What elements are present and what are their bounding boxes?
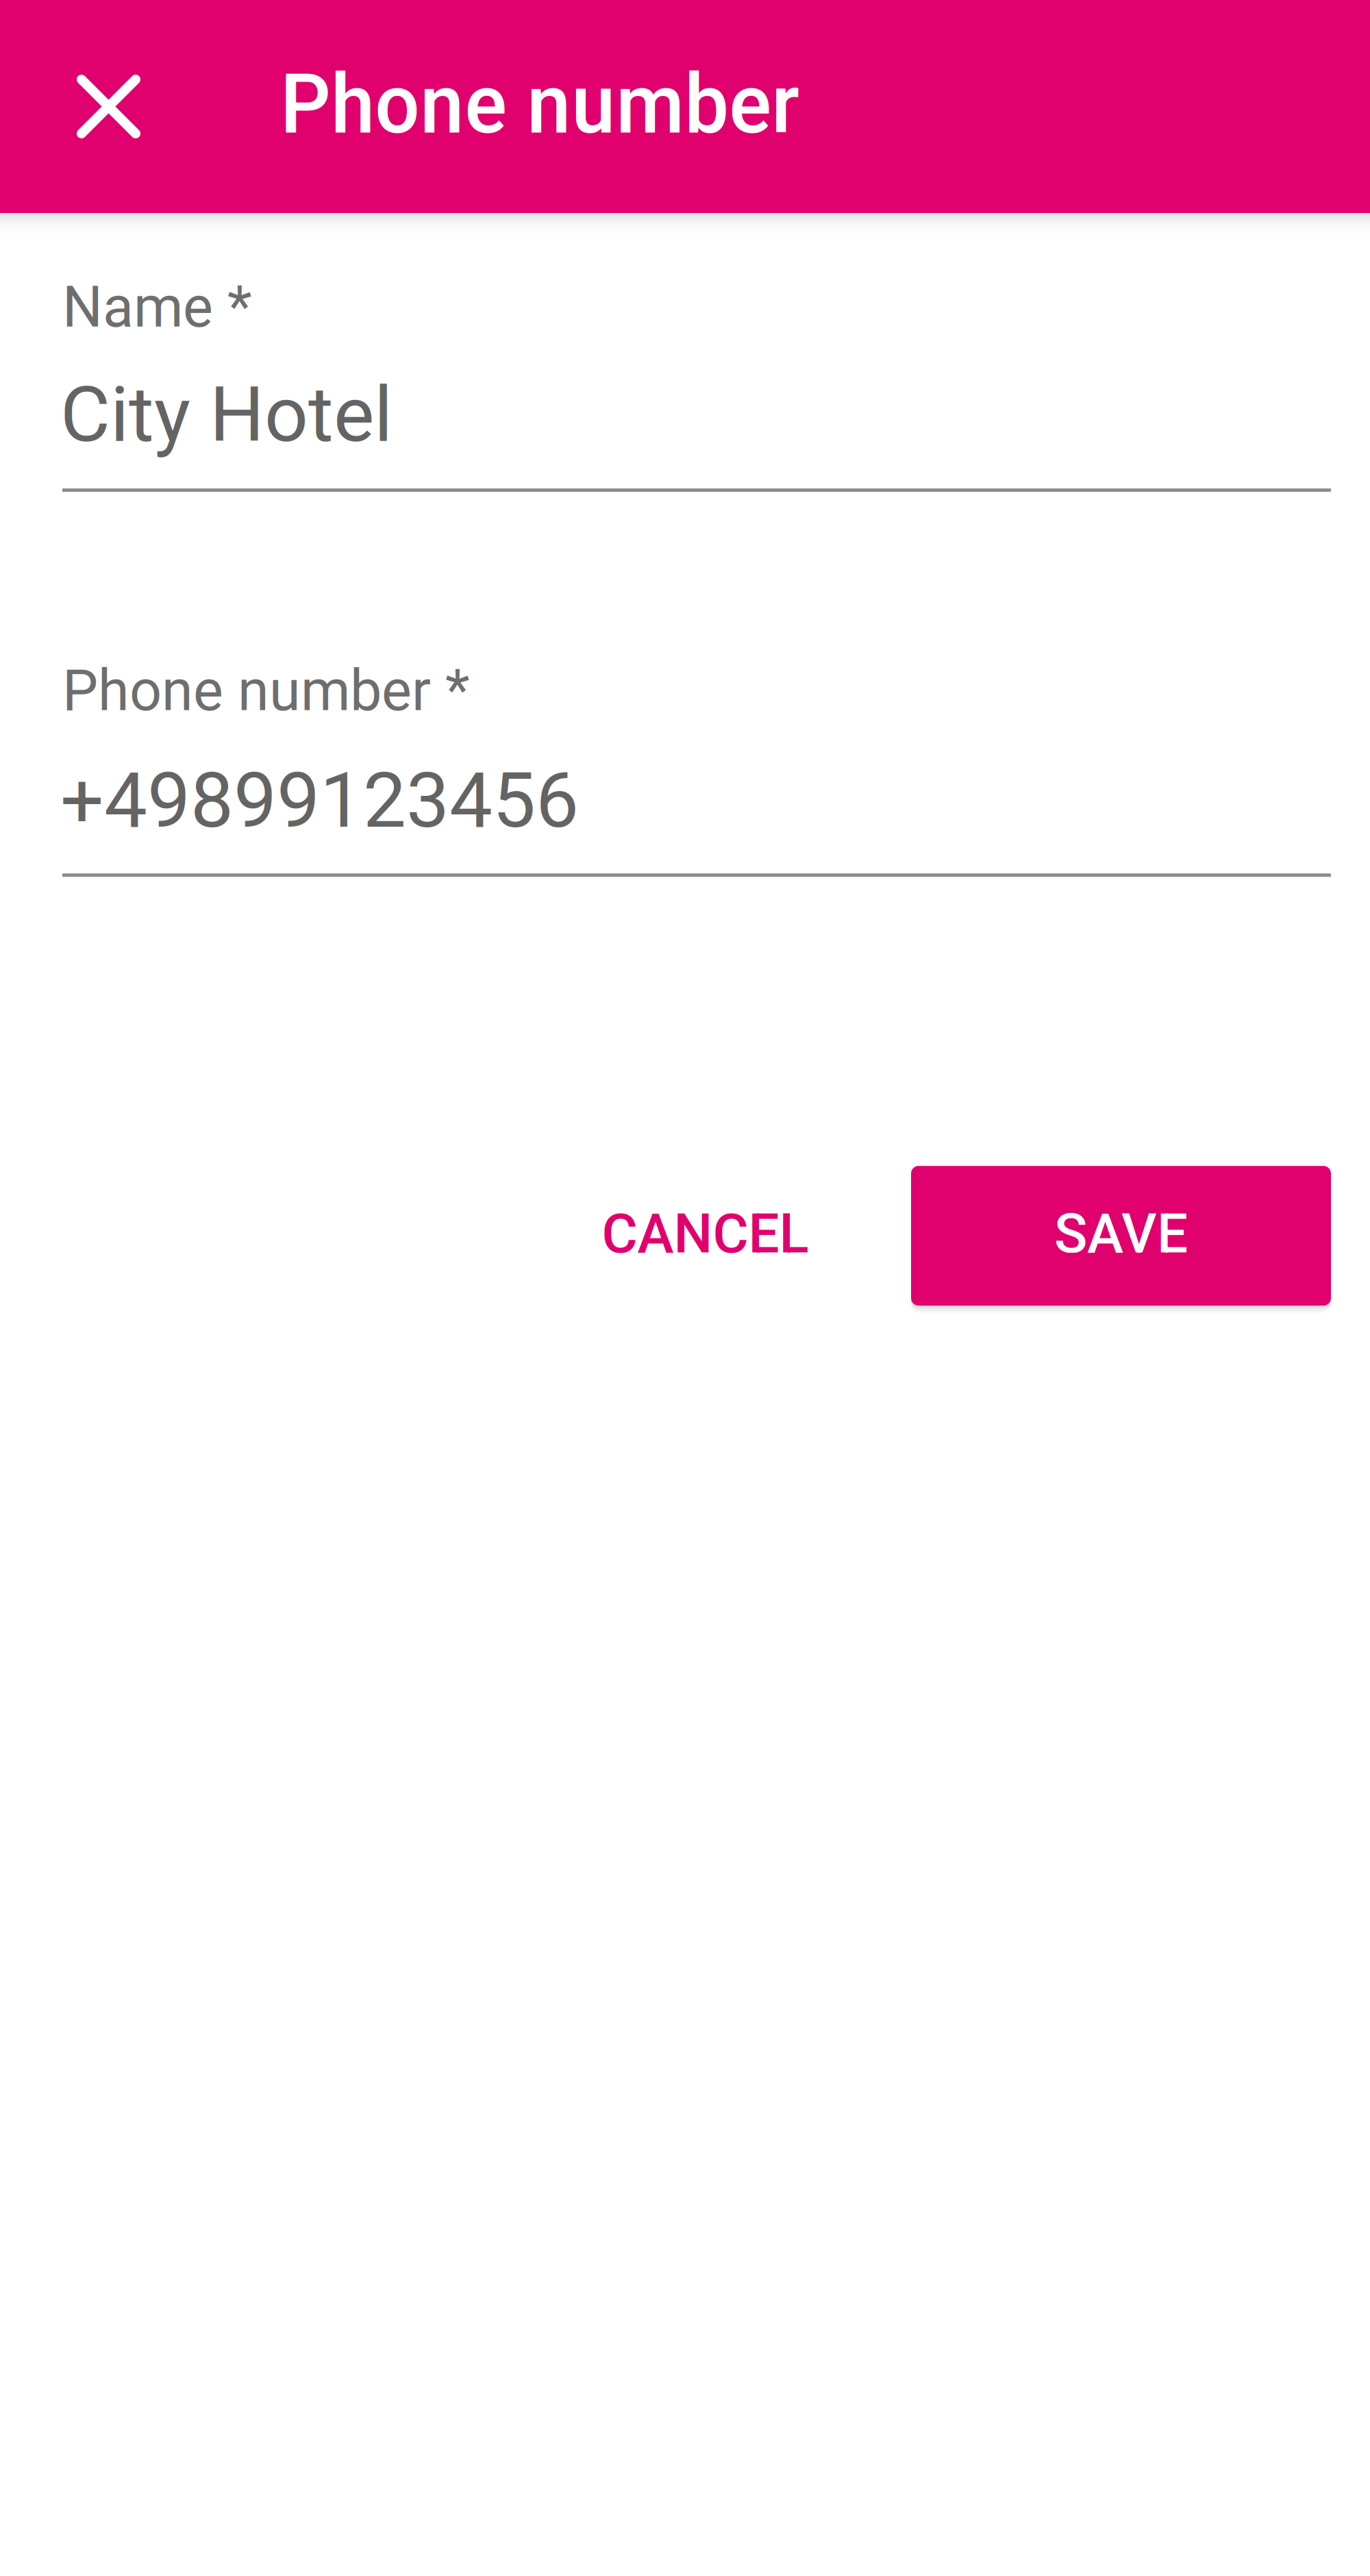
staticText: CANCEL bbox=[602, 1202, 809, 1266]
staticText: +49899123456 bbox=[60, 755, 579, 845]
button[interactable]: SAVE bbox=[911, 1166, 1331, 1306]
staticText: SAVE bbox=[1054, 1202, 1188, 1266]
button[interactable]: CANCEL bbox=[499, 1166, 911, 1306]
staticText: Phone number bbox=[280, 55, 799, 153]
button[interactable]: Close bbox=[0, 0, 217, 213]
staticText: City Hotel bbox=[60, 370, 393, 460]
staticText: Phone number * bbox=[62, 658, 470, 724]
staticText: Name * bbox=[62, 274, 252, 340]
